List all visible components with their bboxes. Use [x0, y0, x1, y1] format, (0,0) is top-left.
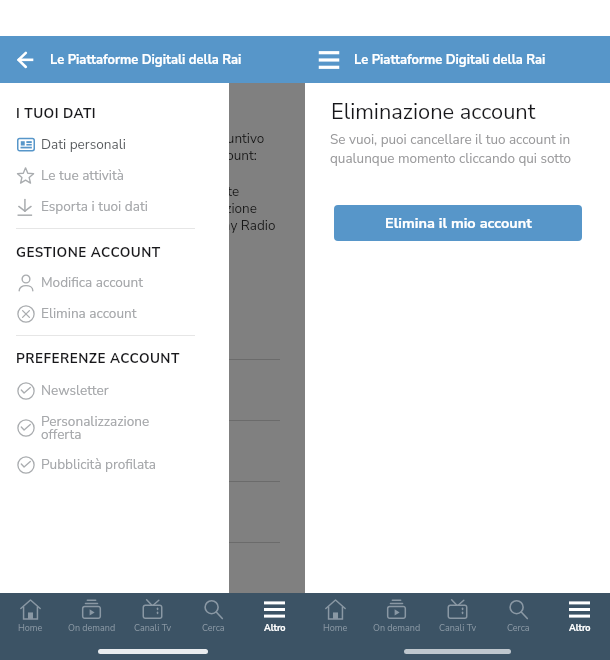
staticText: Newsletter: [41, 381, 109, 400]
staticText: I TUOI DATI: [16, 104, 97, 119]
button[interactable]: Dati personali: [0, 129, 229, 160]
staticText: Le tue attività: [41, 166, 124, 185]
staticText: del tuo account:: [161, 146, 257, 164]
staticText: Esporta i tuoi dati: [41, 197, 148, 216]
staticText: On demand: [68, 622, 116, 634]
button[interactable]: Canali Tv: [427, 593, 488, 639]
staticText: Rai Play Radio: [188, 216, 276, 234]
staticText: Se vuoi, puoi cancellare il tuo account …: [330, 130, 572, 168]
staticText: Le Piattaforme Digitali della Rai: [50, 51, 242, 69]
staticText: Home: [18, 622, 43, 634]
staticText: Altro: [569, 622, 591, 634]
staticText: On demand: [373, 622, 421, 634]
staticText: Home: [323, 622, 348, 634]
staticText: Eliminazione account: [331, 97, 536, 127]
button[interactable]: Pubblicità profilata: [0, 449, 229, 480]
button[interactable]: Altro: [244, 593, 305, 639]
button[interactable]: Esporta i tuoi dati: [0, 191, 229, 222]
button[interactable]: Newsletter: [0, 375, 229, 406]
button[interactable]: Canali Tv: [122, 593, 183, 639]
button[interactable]: Cerca: [183, 593, 244, 639]
staticText: Le Piattaforme Digitali della Rai: [354, 51, 546, 69]
button[interactable]: Le tue attività: [0, 160, 229, 191]
staticText: Altro: [264, 622, 286, 634]
button[interactable]: Back: [12, 47, 38, 73]
button[interactable]: Personalizzazione offerta: [0, 407, 229, 449]
staticText: Canali Tv: [134, 622, 172, 634]
button[interactable]: Home: [0, 593, 61, 639]
staticText: Cerca: [507, 622, 530, 634]
button[interactable]: Elimina il mio account: [334, 205, 582, 241]
staticText: GESTIONE ACCOUNT: [16, 243, 161, 258]
button[interactable]: Elimina account: [0, 298, 229, 329]
staticText: Pubblicità profilata: [41, 455, 157, 474]
button[interactable]: Open navigation menu: [316, 47, 342, 73]
staticText: Modifica account: [41, 273, 143, 292]
button[interactable]: On demand: [61, 593, 122, 639]
staticText: Dati personali: [41, 135, 126, 154]
button[interactable]: On demand: [366, 593, 427, 639]
staticText: Elimina il mio account: [385, 213, 532, 233]
button[interactable]: Home: [305, 593, 366, 639]
button[interactable]: Cerca: [488, 593, 549, 639]
button[interactable]: Modifica account: [0, 267, 229, 298]
staticText: Qui trovi il riepilogo consuntivo: [77, 129, 265, 147]
staticText: PREFERENZE ACCOUNT: [16, 349, 180, 364]
staticText: Elimina account: [41, 304, 137, 323]
staticText: Utente: [198, 182, 240, 200]
staticText: Cerca: [202, 622, 225, 634]
staticText: Personalizzazione offerta: [41, 412, 150, 444]
button[interactable]: Altro: [549, 593, 610, 639]
staticText: Canali Tv: [439, 622, 477, 634]
staticText: Registrazione: [175, 199, 257, 217]
